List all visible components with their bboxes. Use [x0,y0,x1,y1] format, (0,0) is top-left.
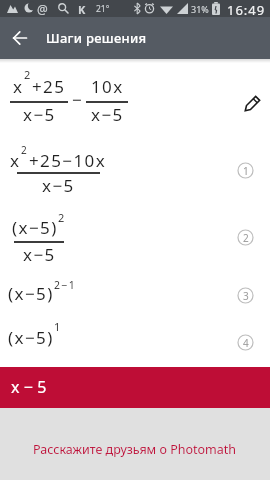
button[interactable]: 2 [237,229,254,246]
staticText: 2 [21,143,29,157]
staticText: x−5 [42,174,75,197]
button[interactable]: Расскажите друзьям о Photomath [33,441,237,458]
button[interactable] [240,92,264,116]
staticText: 2 [24,67,32,82]
staticText: 16:49 [227,1,266,18]
staticText: 21° [96,3,110,15]
staticText: 4 [243,336,249,350]
staticText: 1 [243,164,249,178]
button[interactable] [4,22,36,54]
staticText: x−5 [91,103,124,126]
staticText: +25 [32,75,66,98]
staticText: x−5 [23,103,56,126]
staticText: Расскажите друзьям о Photomath [33,441,237,458]
button[interactable]: 4 [237,334,254,351]
staticText: K [78,2,86,17]
staticText: (x−5) [12,216,58,239]
staticText: x − 5 [11,376,48,398]
staticText: (x−5) [8,282,54,305]
staticText: 3 [243,289,249,303]
staticText: (x−5) [8,326,54,349]
staticText: 10x [91,75,124,98]
staticText: Шаги решения [46,29,147,47]
staticText: @ [37,1,48,17]
staticText: x [10,149,21,172]
staticText: 2 [243,231,249,245]
staticText: 2 [58,210,66,225]
staticText: x [13,75,24,98]
staticText: 31% [191,3,209,15]
staticText: x−5 [23,243,56,266]
staticText: +25−10x [29,149,107,172]
staticText: 1 [54,319,62,334]
staticText: − [72,88,84,111]
button[interactable]: 1 [237,162,254,179]
staticText: 2−1 [54,278,77,292]
button[interactable]: x − 5 [0,367,270,408]
button[interactable]: 3 [237,287,254,304]
